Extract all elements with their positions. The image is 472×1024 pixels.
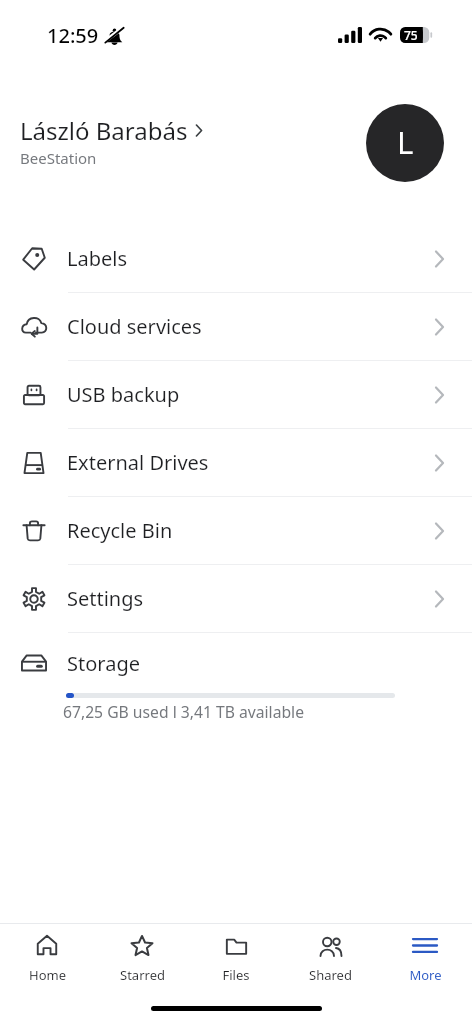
staticText: L [397,121,414,163]
staticText: 67,25 GB used l 3,41 TB available [63,701,304,722]
staticText: Starred [120,966,165,984]
button[interactable]: Storage [0,633,472,722]
staticText: Storage [67,650,140,677]
button[interactable]: Starred [95,932,189,984]
button[interactable]: László Barabás [20,114,203,168]
button[interactable]: USB backup [0,361,472,428]
button[interactable]: More [378,932,472,984]
button[interactable]: Recycle Bin [0,497,472,564]
staticText: Cloud services [67,313,202,340]
staticText: Home [29,966,66,984]
staticText: Labels [67,245,128,272]
button[interactable]: Files [189,932,283,984]
staticText: Shared [309,966,352,984]
button[interactable]: Labels [0,225,472,292]
staticText: Recycle Bin [67,517,173,544]
button[interactable]: External Drives [0,429,472,496]
staticText: USB backup [67,381,180,408]
staticText: Settings [67,585,144,612]
staticText: More [409,966,442,984]
button[interactable]: Settings [0,565,472,632]
button[interactable]: Home [0,932,94,984]
staticText: László Barabás [20,114,188,147]
staticText: BeeStation [20,148,97,168]
button[interactable]: Shared [283,932,377,984]
button[interactable]: Account [366,104,444,182]
staticText: Files [222,966,250,984]
button[interactable]: Cloud services [0,293,472,360]
staticText: 12:59 [47,22,99,49]
staticText: External Drives [67,449,209,476]
staticText: 75 [404,27,418,43]
